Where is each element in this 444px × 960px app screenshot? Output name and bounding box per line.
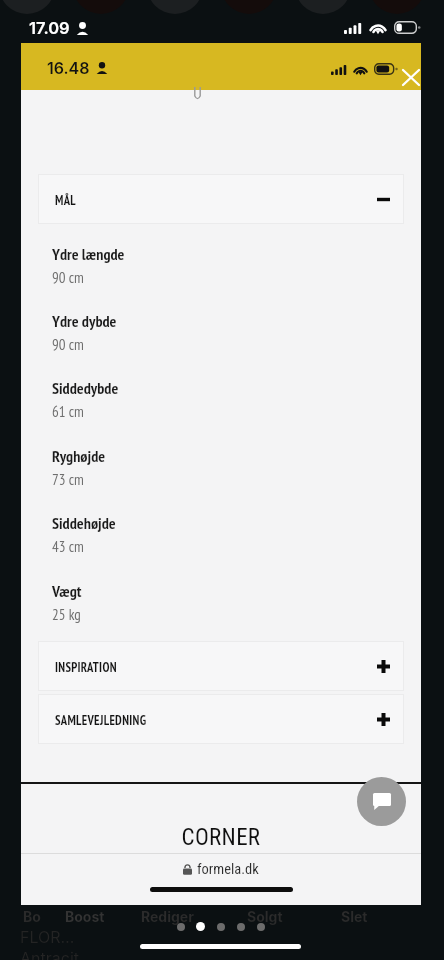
staticText: SAMLEVEJLEDNING	[55, 712, 147, 728]
button[interactable]: INSPIRATION	[38, 641, 404, 691]
staticText: Vægt	[52, 581, 82, 602]
button[interactable]: SAMLEVEJLEDNING	[38, 694, 404, 744]
staticText: 17.09	[29, 18, 70, 38]
button[interactable]: Open chat	[357, 777, 406, 826]
staticText: 25 kg	[52, 605, 81, 624]
staticText: MÅL	[55, 192, 76, 208]
staticText: Antracit	[20, 948, 79, 960]
staticText: Rediger	[141, 908, 194, 925]
staticText: Siddedybde	[52, 378, 119, 399]
staticText: 16.48	[47, 58, 90, 77]
staticText: Ydre dybde	[52, 311, 117, 332]
staticText: INSPIRATION	[55, 659, 117, 675]
staticText: Solgt	[247, 908, 283, 925]
staticText: Ydre længde	[52, 244, 125, 265]
staticText: Siddehøjde	[52, 513, 116, 534]
staticText: 90 cm	[52, 268, 84, 287]
staticText: Bo	[23, 908, 41, 925]
staticText: Ryghøjde	[52, 446, 106, 467]
button[interactable]: MÅL	[38, 174, 404, 224]
staticText: 90 cm	[52, 335, 84, 354]
staticText: formela.dk	[197, 861, 259, 878]
staticText: CORNER	[21, 824, 421, 851]
staticText: Slet	[341, 908, 368, 925]
staticText: 61 cm	[52, 402, 84, 421]
button[interactable]: Close	[393, 59, 429, 95]
staticText: FLOR…	[20, 927, 75, 946]
staticText: 43 cm	[52, 537, 84, 556]
staticText: Boost	[65, 908, 105, 925]
staticText: 73 cm	[52, 470, 84, 489]
